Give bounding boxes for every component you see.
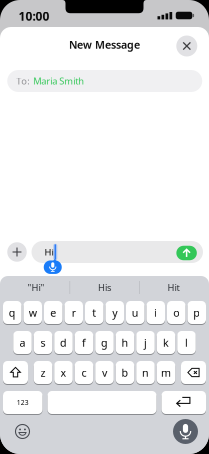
button[interactable]: t — [85, 300, 103, 325]
staticText: c — [81, 365, 86, 380]
button[interactable]: u — [126, 300, 144, 325]
staticText: 123 — [17, 398, 29, 407]
button[interactable]: m — [157, 360, 175, 385]
button[interactable]: h — [116, 330, 134, 355]
staticText: i — [154, 305, 157, 320]
button[interactable]: i — [146, 300, 165, 325]
button[interactable]: v — [95, 360, 114, 385]
button[interactable]: Close — [176, 35, 197, 56]
staticText: e — [50, 305, 56, 320]
button[interactable]: k — [157, 330, 175, 355]
button[interactable]: Dictation — [44, 258, 62, 274]
staticText: k — [163, 335, 169, 350]
staticText: u — [132, 305, 139, 320]
staticText: j — [144, 335, 147, 350]
button[interactable]: b — [116, 360, 134, 385]
button[interactable]: Dictate — [173, 419, 198, 444]
button[interactable]: s — [34, 330, 52, 355]
button[interactable]: Send — [176, 246, 197, 260]
staticText: h — [121, 335, 128, 350]
button[interactable]: z — [34, 360, 52, 385]
staticText: Hi — [44, 246, 53, 258]
staticText: "Hi" — [27, 281, 44, 294]
staticText: His — [98, 281, 111, 294]
button[interactable]: d — [54, 330, 73, 355]
staticText: x — [60, 365, 66, 380]
staticText: n — [142, 365, 149, 380]
button[interactable]: o — [167, 300, 185, 325]
button[interactable]: 123 — [3, 390, 42, 415]
staticText: z — [40, 365, 45, 380]
staticText: q — [9, 305, 16, 320]
button[interactable] — [31, 241, 203, 263]
button[interactable]: Delete — [181, 360, 206, 385]
staticText: b — [121, 365, 128, 380]
staticText: o — [173, 305, 179, 320]
button[interactable]: r — [64, 300, 83, 325]
staticText: m — [161, 365, 171, 380]
button[interactable]: q — [3, 300, 21, 325]
button[interactable]: Add attachment — [7, 242, 27, 262]
staticText: r — [72, 305, 76, 320]
staticText: w — [29, 305, 37, 320]
button[interactable]: j — [136, 330, 155, 355]
button[interactable]: n — [136, 360, 155, 385]
staticText: v — [102, 365, 107, 380]
button[interactable]: p — [187, 300, 206, 325]
staticText: 10:00 — [18, 8, 49, 24]
button[interactable]: His — [71, 278, 137, 296]
staticText: To: — [16, 75, 30, 87]
button[interactable]: To: — [7, 70, 202, 92]
staticText: New Message — [69, 37, 140, 52]
button[interactable]: w — [23, 300, 42, 325]
button[interactable]: Shift — [3, 360, 28, 385]
staticText: d — [60, 335, 67, 350]
button[interactable]: g — [95, 330, 114, 355]
staticText: g — [101, 335, 108, 350]
button[interactable]: l — [177, 330, 196, 355]
button[interactable]: f — [75, 330, 93, 355]
button[interactable]: x — [54, 360, 73, 385]
button[interactable]: c — [75, 360, 93, 385]
staticText: f — [82, 335, 86, 350]
button[interactable]: Return — [161, 390, 206, 415]
staticText: Maria Smith — [33, 75, 84, 87]
staticText: y — [112, 305, 117, 320]
button[interactable]: y — [105, 300, 124, 325]
staticText: a — [19, 335, 25, 350]
staticText: l — [185, 335, 188, 350]
staticText: t — [92, 305, 96, 320]
button[interactable]: a — [13, 330, 32, 355]
button[interactable]: Emoji — [15, 424, 29, 438]
staticText: p — [193, 305, 200, 320]
staticText: s — [40, 335, 45, 350]
button[interactable]: Hit — [140, 278, 206, 296]
button[interactable]: Space — [47, 390, 156, 415]
staticText: Hit — [167, 281, 179, 294]
button[interactable]: "Hi" — [3, 278, 69, 296]
button[interactable]: e — [44, 300, 62, 325]
